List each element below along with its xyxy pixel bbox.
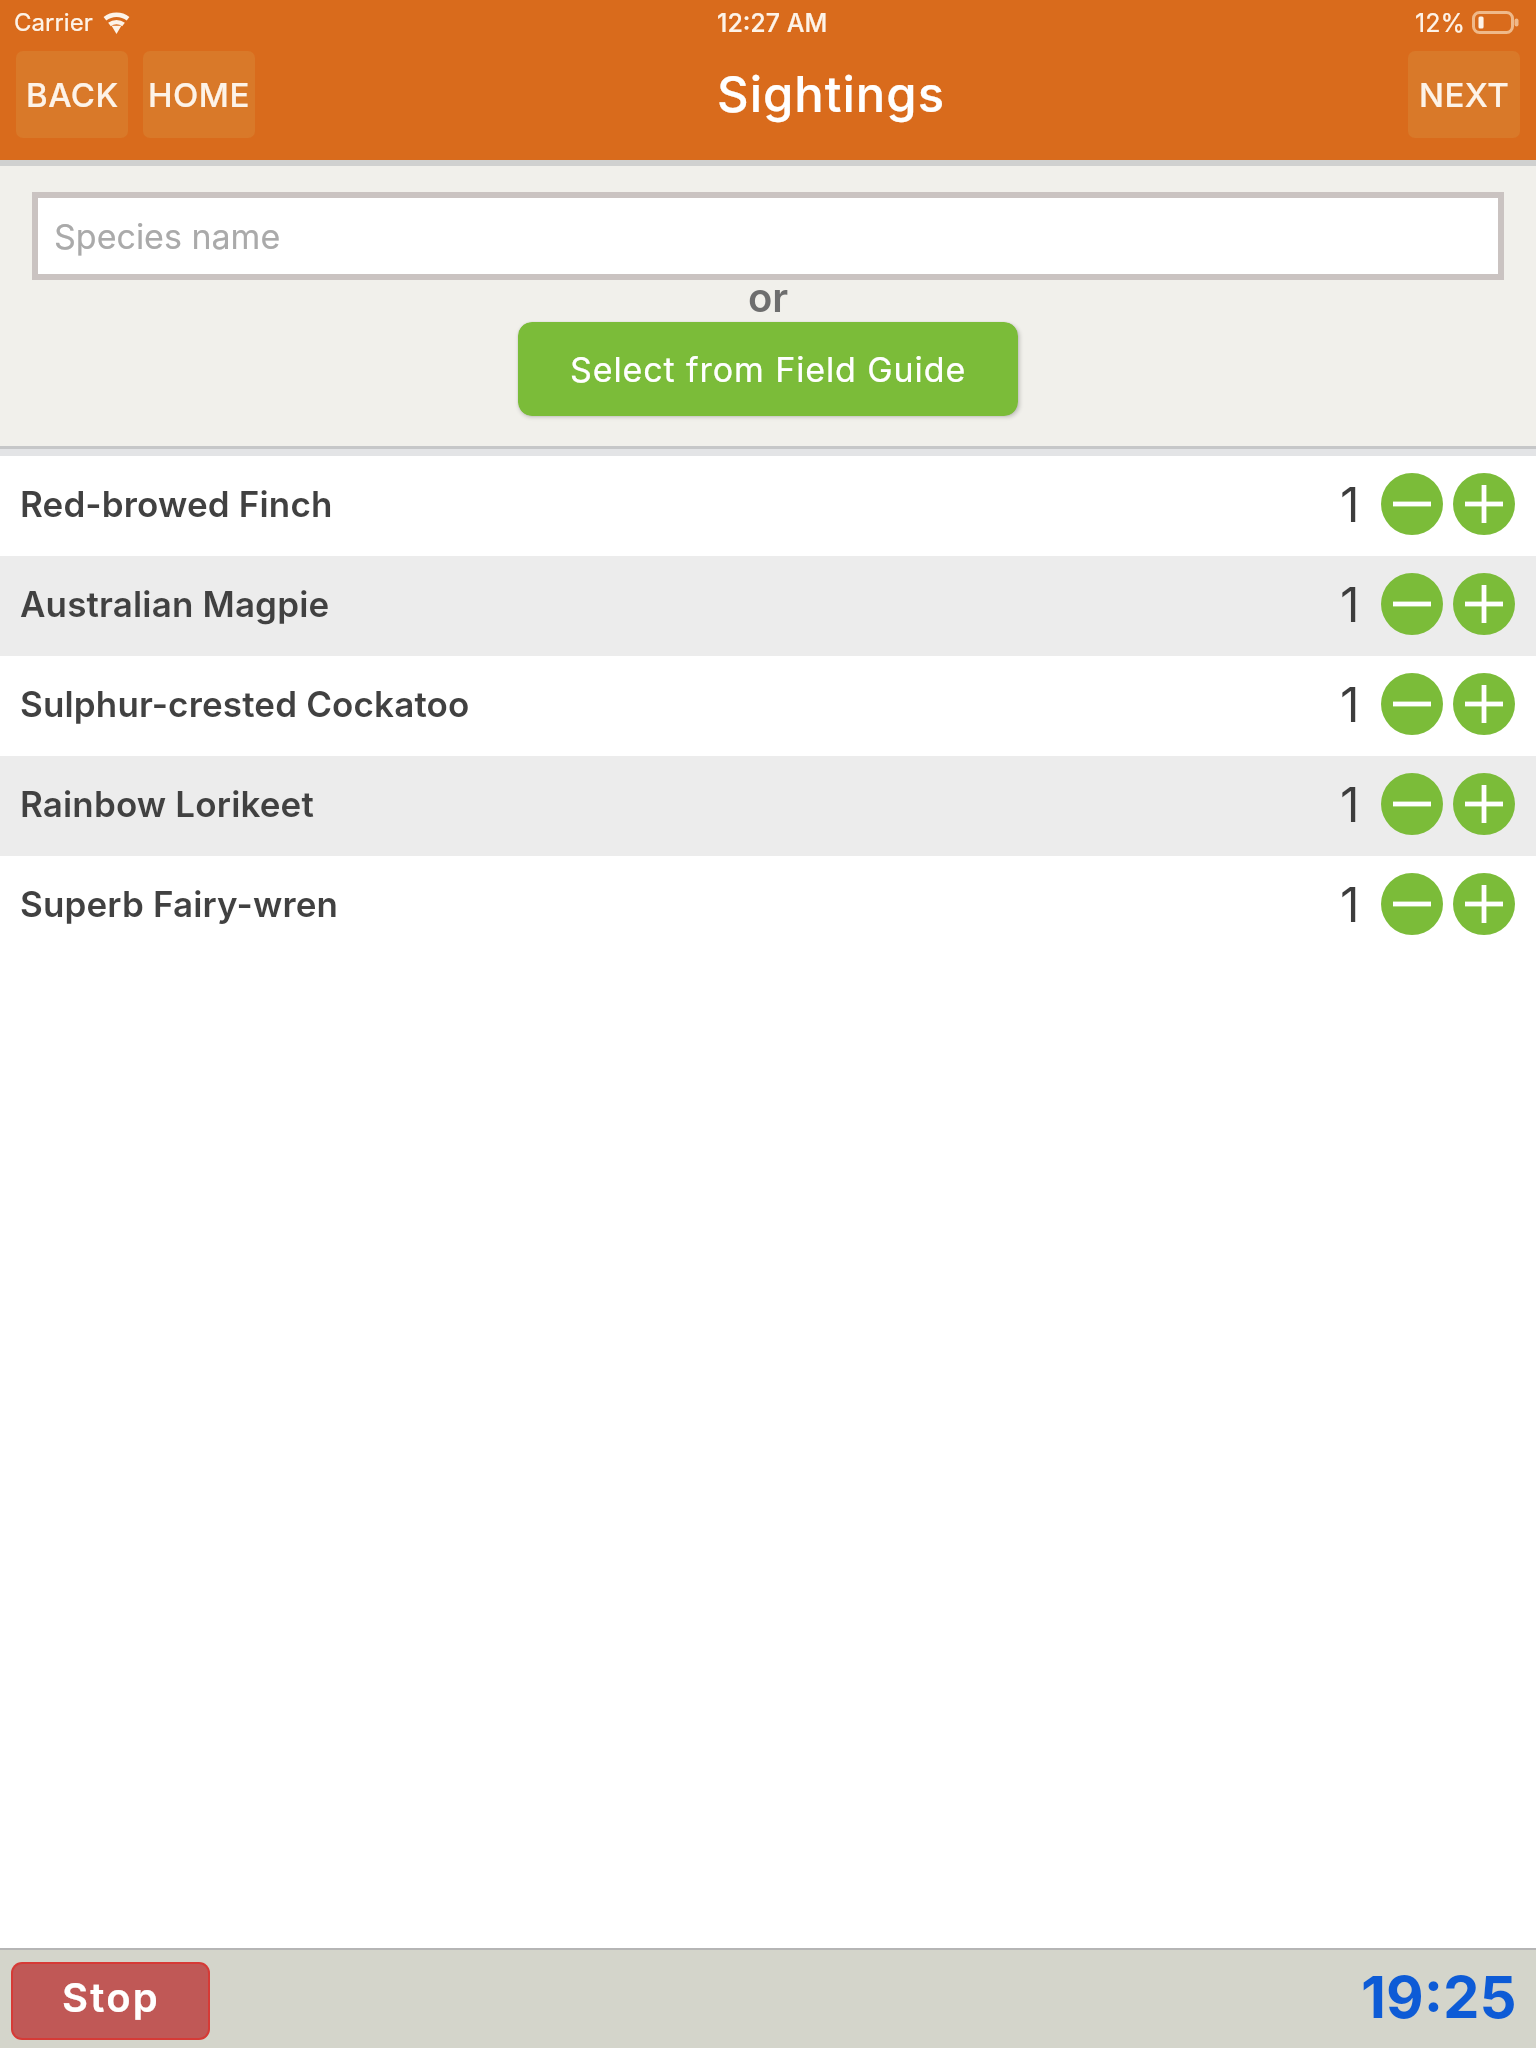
staticText: 1 xyxy=(1340,675,1360,733)
button[interactable]: Australian Magpie xyxy=(0,556,1536,656)
button[interactable]: Decrease count xyxy=(1381,573,1443,635)
staticText: 1 xyxy=(1340,475,1360,533)
staticText: Superb Fairy-wren xyxy=(20,883,339,925)
button[interactable]: Increase count xyxy=(1453,873,1515,935)
staticText: HOME xyxy=(148,75,250,115)
staticText: 12% xyxy=(1415,8,1465,38)
staticText: Select from Field Guide xyxy=(570,349,967,390)
staticText: Rainbow Lorikeet xyxy=(20,783,314,825)
staticText: Sightings xyxy=(717,65,946,124)
button[interactable]: Sulphur-crested Cockatoo xyxy=(0,656,1536,756)
button[interactable]: Decrease count xyxy=(1381,473,1443,535)
staticText: 1 xyxy=(1340,575,1360,633)
button[interactable]: Decrease count xyxy=(1381,773,1443,835)
button[interactable]: Increase count xyxy=(1453,473,1515,535)
button[interactable]: Stop xyxy=(13,1964,208,2038)
button[interactable]: Rainbow Lorikeet xyxy=(0,756,1536,856)
button[interactable]: Species name xyxy=(38,198,1498,274)
staticText: 1 xyxy=(1340,775,1360,833)
staticText: Sulphur-crested Cockatoo xyxy=(20,683,470,725)
staticText: Australian Magpie xyxy=(20,583,330,625)
button[interactable]: Increase count xyxy=(1453,773,1515,835)
button[interactable]: Decrease count xyxy=(1381,873,1443,935)
staticText: Species name xyxy=(54,216,281,257)
button[interactable]: Superb Fairy-wren xyxy=(0,856,1536,956)
button[interactable]: NEXT xyxy=(1408,51,1520,138)
button[interactable]: HOME xyxy=(143,51,255,138)
button[interactable]: Increase count xyxy=(1453,673,1515,735)
staticText: or xyxy=(748,273,789,321)
staticText: Red-browed Finch xyxy=(20,483,333,525)
staticText: Stop xyxy=(62,1973,160,2021)
button[interactable]: Increase count xyxy=(1453,573,1515,635)
staticText: 19:25 xyxy=(1361,1962,1517,2032)
button[interactable]: Decrease count xyxy=(1381,673,1443,735)
staticText: NEXT xyxy=(1419,75,1510,115)
button[interactable]: Select from Field Guide xyxy=(518,322,1018,416)
staticText: BACK xyxy=(26,75,119,115)
staticText: 1 xyxy=(1340,875,1360,933)
button[interactable]: Red-browed Finch xyxy=(0,456,1536,556)
staticText: Carrier xyxy=(14,8,93,37)
staticText: 12:27 AM xyxy=(717,8,828,38)
button[interactable]: BACK xyxy=(16,51,128,138)
